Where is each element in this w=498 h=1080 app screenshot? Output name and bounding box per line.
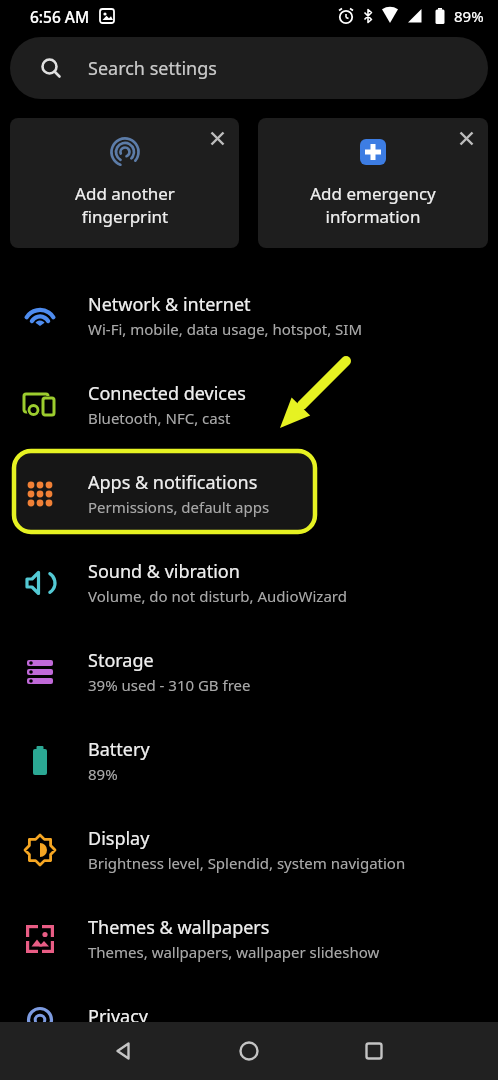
button[interactable] [203, 124, 232, 153]
staticText: 39% used - 310 GB free [88, 675, 251, 695]
button[interactable] [452, 124, 481, 153]
button[interactable]: Battery [0, 716, 498, 805]
button[interactable]: Display [0, 805, 498, 894]
button[interactable]: Add another fingerprint [10, 118, 239, 248]
button[interactable]: Sound & vibration [0, 538, 498, 627]
staticText: 89% [88, 764, 118, 784]
staticText: Permissions, default apps [88, 497, 270, 517]
button[interactable]: Storage [0, 627, 498, 716]
staticText: Network & internet [88, 292, 251, 317]
staticText: Brightness level, Splendid, system navig… [88, 853, 406, 873]
staticText: Apps & notifications [88, 470, 258, 495]
staticText: Add emergency information [310, 182, 436, 228]
button[interactable]: Network & internet [0, 271, 498, 360]
staticText: Search settings [88, 56, 217, 81]
staticText: Privacy [88, 1004, 149, 1029]
button[interactable] [186, 1022, 311, 1080]
button[interactable]: Apps & notifications [0, 449, 498, 538]
button[interactable] [62, 1022, 186, 1080]
staticText: 6:56 AM [30, 6, 90, 27]
staticText: Add another fingerprint [75, 182, 175, 228]
staticText: Sound & vibration [88, 559, 240, 584]
button[interactable]: Connected devices [0, 360, 498, 449]
staticText: Display [88, 826, 150, 851]
staticText: Connected devices [88, 381, 246, 406]
staticText: Permissions, account activity, personal … [88, 1031, 395, 1051]
staticText: 89% [454, 6, 484, 26]
button[interactable]: Privacy [0, 983, 498, 1072]
staticText: Volume, do not disturb, AudioWizard [88, 586, 347, 606]
button[interactable] [311, 1022, 436, 1080]
staticText: Themes & wallpapers [88, 915, 270, 940]
button[interactable]: Add emergency information [258, 118, 488, 248]
staticText: Bluetooth, NFC, cast [88, 408, 231, 428]
staticText: Battery [88, 737, 150, 762]
button[interactable]: Search settings [10, 37, 488, 99]
staticText: Storage [88, 648, 154, 673]
staticText: Themes, wallpapers, wallpaper slideshow [88, 942, 380, 962]
button[interactable]: Themes & wallpapers [0, 894, 498, 983]
staticText: Wi-Fi, mobile, data usage, hotspot, SIM [88, 319, 363, 339]
